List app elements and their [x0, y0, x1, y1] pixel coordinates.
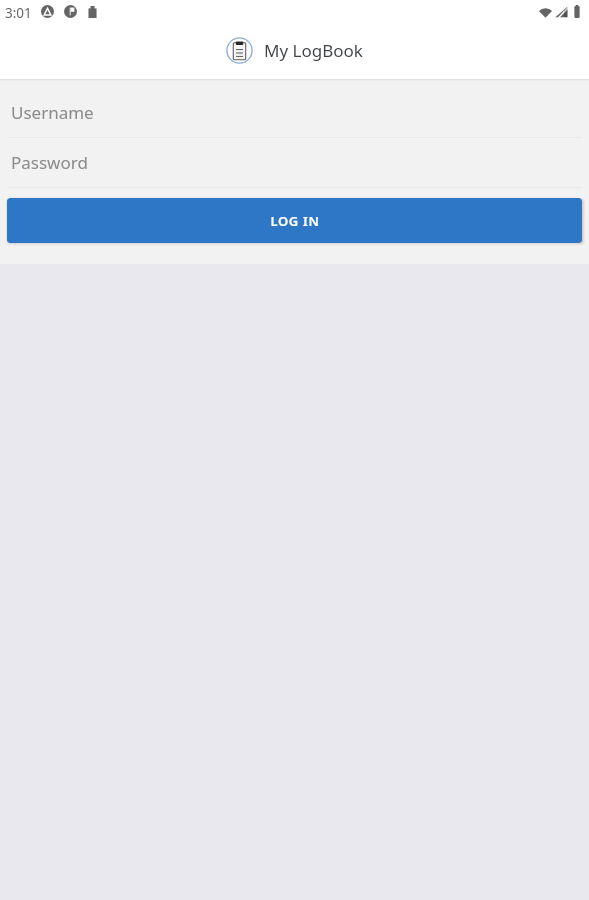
staticText: Username — [11, 101, 94, 124]
button[interactable]: Username — [0, 88, 589, 138]
staticText: Password — [11, 151, 88, 174]
staticText: 3:01 — [5, 4, 32, 22]
button[interactable]: LOG IN — [7, 198, 582, 243]
other: My LogBook logo — [226, 37, 253, 64]
staticText: LOG IN — [270, 212, 320, 230]
button[interactable]: My LogBook logo — [226, 37, 363, 64]
staticText: My LogBook — [264, 39, 363, 62]
button[interactable]: Password — [0, 138, 589, 188]
